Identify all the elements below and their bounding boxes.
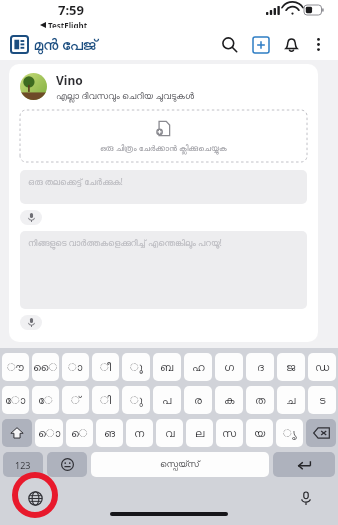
button[interactable]: ല <box>186 419 213 447</box>
button[interactable]: പ <box>153 386 181 414</box>
staticText: ല <box>195 428 205 439</box>
button[interactable]: ത <box>246 386 274 414</box>
staticText: ൈ <box>33 362 58 373</box>
staticText: ഒരു തലക്കെട്ട് ചേർക്കുക! <box>28 176 123 188</box>
staticText: േ <box>38 395 53 406</box>
staticText: സ്പെയ്സ് <box>160 460 200 469</box>
staticText: ഡ <box>315 362 330 373</box>
button[interactable]: ൂ <box>122 353 150 381</box>
staticText: മുൻ പേജ് <box>34 34 98 54</box>
button[interactable]: ഒരു തലക്കെട്ട് ചേർക്കുക! <box>20 170 307 204</box>
button[interactable]: Add post <box>248 32 273 57</box>
staticText: ൗ <box>7 362 24 373</box>
staticText: െ <box>71 428 88 439</box>
button[interactable]: ക <box>215 386 243 414</box>
button[interactable]: ു <box>122 386 150 414</box>
staticText: ൊ <box>38 428 61 439</box>
button[interactable]: ര <box>184 386 212 414</box>
button[interactable]: െ <box>66 419 93 447</box>
staticText: ദ <box>257 362 264 373</box>
button[interactable]: സ്പെയ്സ് <box>91 452 269 477</box>
staticText: ീ <box>100 362 112 373</box>
button[interactable]: 123 <box>3 452 43 477</box>
button[interactable]: Voice input <box>20 210 42 225</box>
staticText: എല്ലാ ദിവസവും ചെറിയ ചുവടുകൾ <box>56 89 194 101</box>
button[interactable]: നിങ്ങളുടെ വാർത്തകളെക്കുറിച്ച് എന്തെങ്കില… <box>20 231 307 309</box>
button[interactable]: ബ <box>153 353 181 381</box>
button[interactable]: ോ <box>2 386 29 414</box>
button[interactable]: ട <box>308 386 336 414</box>
button[interactable]: ി <box>92 386 119 414</box>
staticText: ൃ <box>283 428 297 439</box>
button[interactable]: സ <box>216 419 243 447</box>
button[interactable]: ൗ <box>2 353 29 381</box>
button[interactable]: Return <box>273 452 335 477</box>
button[interactable]: Profile photo <box>20 73 47 100</box>
staticText: വ <box>165 428 175 439</box>
button[interactable]: ഗ <box>215 353 243 381</box>
staticText: യ <box>254 428 266 439</box>
button[interactable]: Click to add a picture <box>20 110 307 162</box>
button[interactable]: ജ <box>277 353 305 381</box>
button[interactable]: ങ <box>96 419 123 447</box>
staticText: ി <box>100 395 112 406</box>
staticText: ര <box>194 395 202 406</box>
button[interactable]: ൈ <box>32 353 59 381</box>
button[interactable]: Dictation <box>296 488 316 508</box>
button[interactable]: Search <box>217 32 242 57</box>
staticText: 123 <box>15 459 31 471</box>
staticText: ഹ <box>192 362 205 373</box>
button[interactable]: ഹ <box>184 353 212 381</box>
button[interactable]: വ <box>156 419 183 447</box>
staticText: ന <box>134 428 145 439</box>
button[interactable]: ൃ <box>276 419 303 447</box>
staticText: ഒരു ചിത്രം ചേർക്കാൻ ക്ലിക്കുചെയ്യുക <box>100 142 227 153</box>
button[interactable]: More options <box>306 32 331 57</box>
button[interactable]: Change keyboard language <box>24 487 46 509</box>
staticText: ത <box>255 395 266 406</box>
staticText: പ <box>162 395 172 406</box>
staticText: ു <box>130 395 143 406</box>
button[interactable]: േ <box>32 386 59 414</box>
staticText: ക <box>224 395 235 406</box>
button[interactable]: ീ <box>92 353 119 381</box>
staticText: ഗ <box>224 362 235 373</box>
button[interactable]: ൊ <box>35 419 63 447</box>
button[interactable]: Backspace <box>306 419 336 447</box>
staticText: നിങ്ങളുടെ വാർത്തകളെക്കുറിച്ച് എന്തെങ്കില… <box>28 237 222 249</box>
staticText: ാ <box>68 362 83 373</box>
button[interactable]: ് <box>62 386 89 414</box>
button[interactable]: ന <box>126 419 153 447</box>
staticText: ോ <box>5 395 26 406</box>
button[interactable]: Notifications <box>279 32 304 57</box>
button[interactable]: ദ <box>246 353 274 381</box>
staticText: സ <box>222 428 237 439</box>
staticText: ് <box>71 395 81 406</box>
button[interactable]: മുൻ പേജ് <box>11 34 98 54</box>
button[interactable]: Emoji <box>47 452 87 477</box>
button[interactable]: Voice input <box>20 315 42 330</box>
button[interactable]: ച <box>277 386 305 414</box>
staticText: ബ <box>160 362 174 373</box>
staticText: 7:59 <box>58 1 84 19</box>
button[interactable]: ാ <box>62 353 89 381</box>
button[interactable]: ഡ <box>308 353 336 381</box>
staticText: ൂ <box>130 362 143 373</box>
staticText: ജ <box>286 362 296 373</box>
staticText: TestFlight <box>48 20 88 29</box>
staticText: Vino <box>56 72 83 88</box>
staticText: ച <box>286 395 296 406</box>
staticText: ങ <box>104 428 116 439</box>
staticText: ട <box>319 395 326 406</box>
button[interactable]: Shift <box>2 419 32 447</box>
button[interactable]: യ <box>246 419 273 447</box>
